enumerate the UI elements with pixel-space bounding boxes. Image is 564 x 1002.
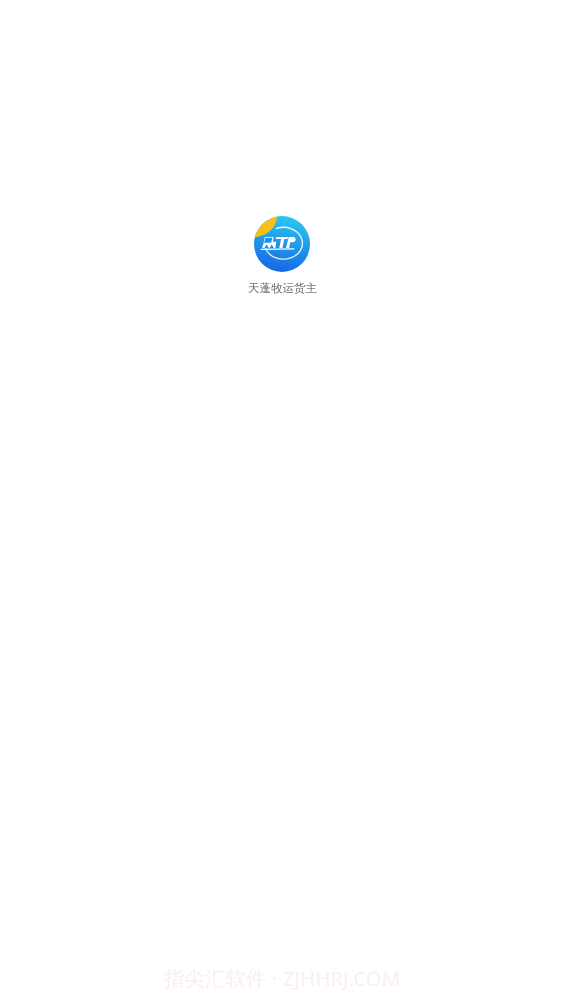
staticText: 指尖汇软件 · ZJHHRJ.COM [164, 964, 401, 992]
button[interactable]: 天蓬牧运货主 app icon [254, 216, 310, 272]
staticText: 天蓬牧运货主 [248, 281, 317, 295]
